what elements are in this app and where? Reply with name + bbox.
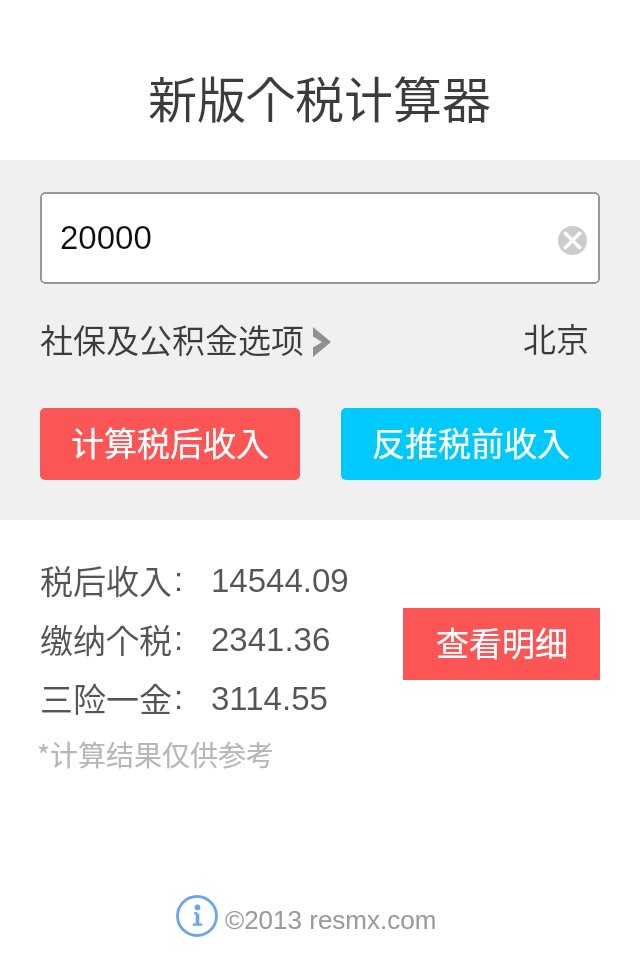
staticText: 北京 — [523, 314, 589, 362]
staticText: 20000 — [60, 219, 152, 256]
staticText: 计算税后收入 — [71, 418, 269, 466]
button[interactable]: 北京 — [505, 312, 606, 364]
button[interactable]: 社保及公积金选项 — [40, 313, 331, 365]
staticText: 社保及公积金选项 — [40, 315, 304, 363]
staticText: *计算结果仅供参考 — [37, 734, 275, 775]
staticText: 2341.36 — [211, 621, 331, 658]
button[interactable]: 计算税后收入 — [40, 408, 300, 480]
staticText: 反推税前收入 — [372, 418, 570, 466]
staticText: : — [174, 679, 184, 716]
staticText: 新版个税计算器 — [148, 61, 492, 132]
staticText: 税后收入 — [40, 556, 172, 604]
button[interactable]: 20000 — [40, 192, 600, 284]
staticText: : — [174, 561, 184, 598]
staticText: ©2013 resmx.com — [225, 905, 437, 934]
staticText: : — [174, 620, 184, 657]
staticText: 三险一金 — [40, 674, 172, 722]
button[interactable]: Clear text — [550, 218, 594, 262]
staticText: 缴纳个税 — [40, 615, 172, 663]
staticText: 3114.55 — [211, 680, 328, 717]
button[interactable]: 查看明细 — [403, 608, 600, 680]
staticText: 14544.09 — [211, 562, 349, 599]
button[interactable]: Information — [175, 894, 219, 938]
button[interactable]: 反推税前收入 — [341, 408, 601, 480]
staticText: 查看明细 — [436, 618, 568, 666]
